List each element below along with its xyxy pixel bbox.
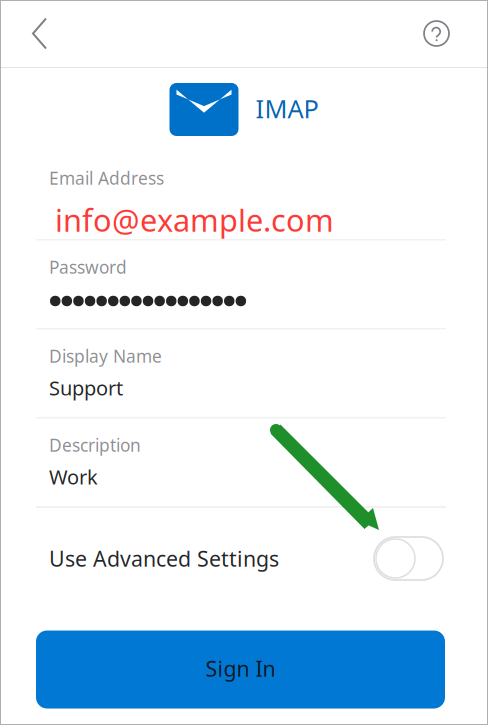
staticText: Description bbox=[49, 433, 141, 456]
staticText: Sign In bbox=[205, 654, 275, 683]
staticText: Work bbox=[49, 463, 98, 490]
staticText: Support bbox=[49, 374, 123, 401]
staticText: Display Name bbox=[49, 344, 162, 367]
button[interactable]: Sign In bbox=[36, 630, 445, 708]
button[interactable]: Help bbox=[404, 1, 488, 66]
button[interactable]: Back bbox=[0, 0, 67, 66]
staticText: IMAP bbox=[255, 92, 318, 125]
staticText: Email Address bbox=[49, 166, 164, 189]
staticText: info@example.com bbox=[55, 199, 334, 240]
button[interactable]: Use Advanced Settings bbox=[0, 507, 488, 630]
staticText: Password bbox=[49, 255, 127, 278]
staticText: Use Advanced Settings bbox=[49, 544, 279, 573]
